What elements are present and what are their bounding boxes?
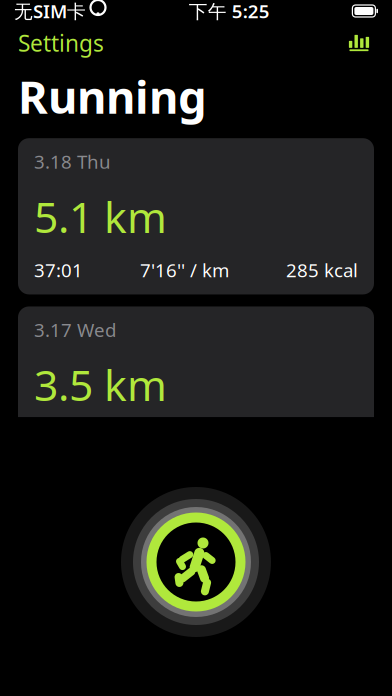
staticText: 3.18 Thu [34, 149, 111, 174]
staticText: 37:01 [34, 258, 83, 282]
staticText: 7'16'' / km [140, 258, 229, 282]
staticText: 无SIM卡 [14, 0, 86, 23]
staticText: Running [18, 66, 207, 126]
button[interactable]: 3.17 Wed [18, 306, 374, 463]
button[interactable]: Statistics [344, 30, 374, 56]
button[interactable]: 3.14 Sun [18, 475, 374, 631]
staticText: 3.5 km [34, 356, 167, 413]
staticText: 3.2 km [34, 524, 167, 581]
staticText: 285 kcal [286, 258, 358, 282]
staticText: 下午 5:25 [189, 0, 270, 23]
button[interactable]: 3.18 Thu [18, 138, 374, 294]
staticText: 7'12'' / km [140, 594, 229, 619]
staticText: 5.1 km [34, 188, 167, 245]
staticText: 3.17 Wed [34, 317, 116, 342]
button[interactable]: Settings [18, 28, 104, 58]
button[interactable]: Start run [121, 487, 271, 637]
staticText: Settings [18, 28, 104, 58]
